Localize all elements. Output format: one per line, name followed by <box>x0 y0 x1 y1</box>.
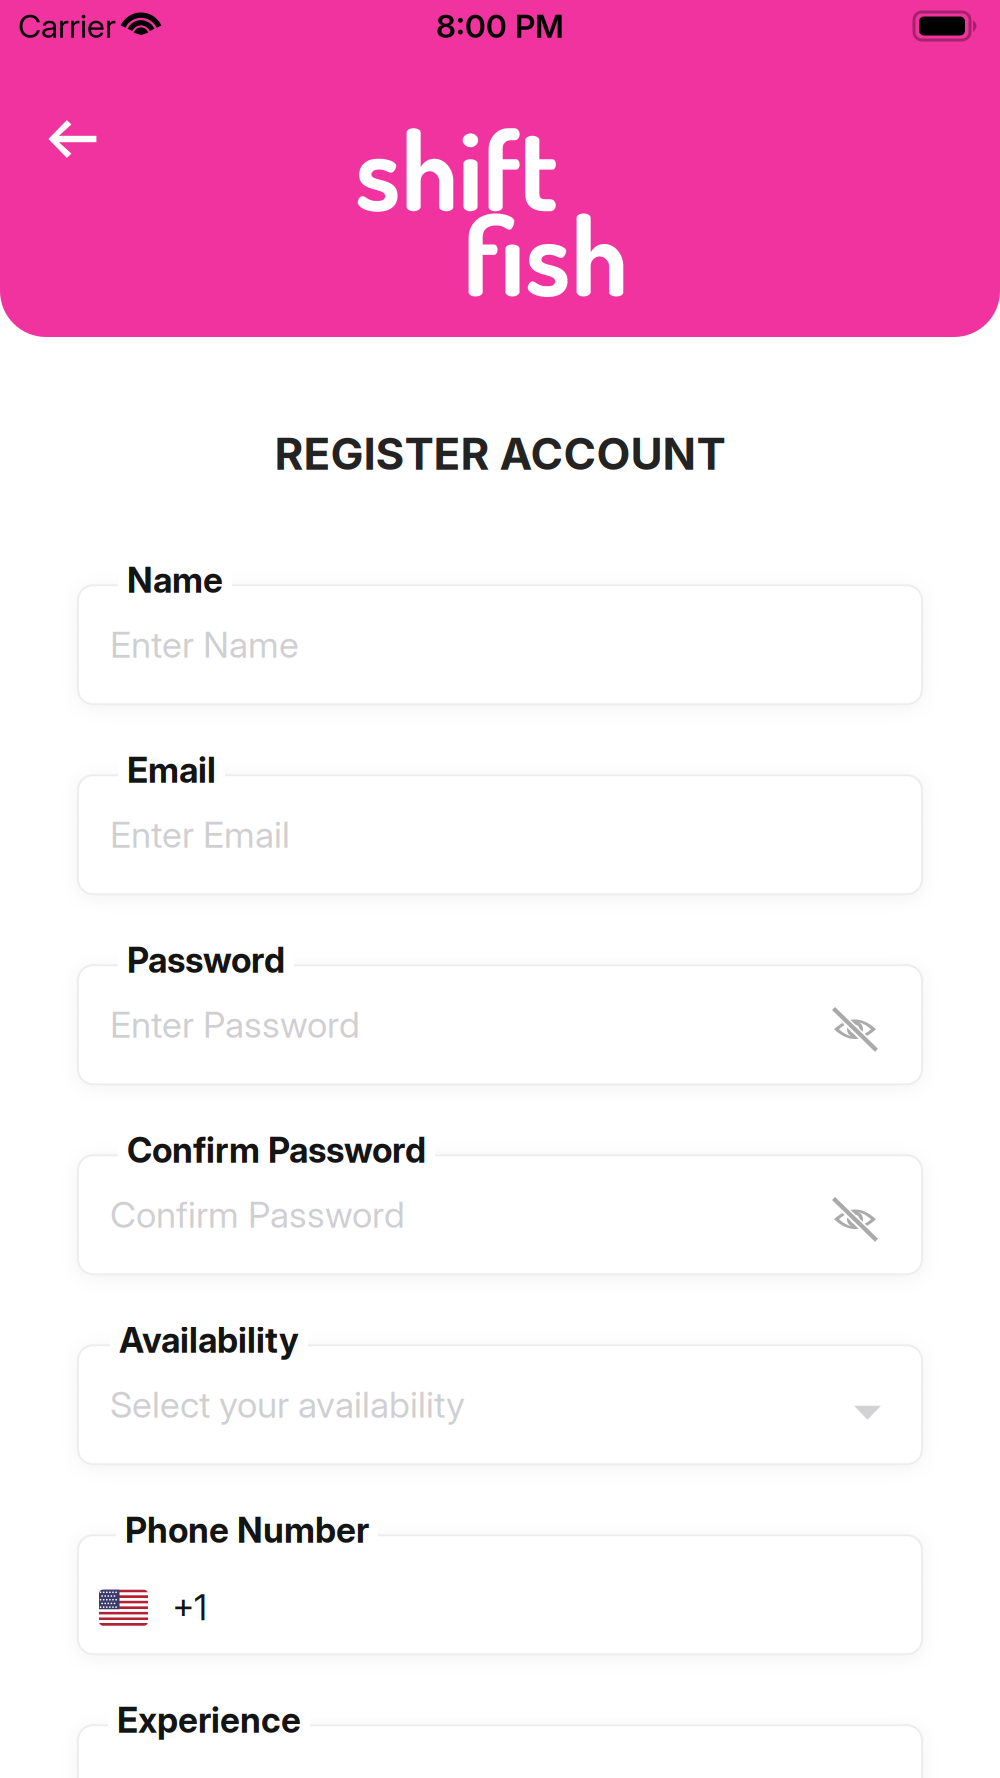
button[interactable]: Show confirm password <box>852 1195 896 1235</box>
staticText: Select your availability <box>110 1383 465 1427</box>
staticText: REGISTER ACCOUNT <box>274 427 725 480</box>
staticText: Phone Number <box>125 1509 369 1551</box>
staticText: Enter Password <box>110 1003 360 1047</box>
staticText: Experience <box>117 1699 301 1741</box>
staticText: Carrier <box>18 7 116 45</box>
staticText: Password <box>127 939 285 981</box>
staticText: Enter Email <box>110 813 290 857</box>
staticText: shift <box>355 99 558 237</box>
button[interactable]: Back <box>0 0 133 192</box>
staticText: 8:00 PM <box>436 7 564 45</box>
staticText: Availability <box>119 1319 299 1361</box>
staticText: fish <box>463 184 628 322</box>
staticText: Confirm Password <box>127 1129 426 1171</box>
staticText: Name <box>127 559 223 601</box>
staticText: Enter Name <box>110 623 299 667</box>
staticText: +1 <box>172 1587 207 1629</box>
button[interactable]: Select your availability <box>78 1345 922 1464</box>
staticText: Email <box>127 749 216 791</box>
button[interactable]: Show password <box>852 1005 896 1045</box>
staticText: Confirm Password <box>110 1193 405 1237</box>
